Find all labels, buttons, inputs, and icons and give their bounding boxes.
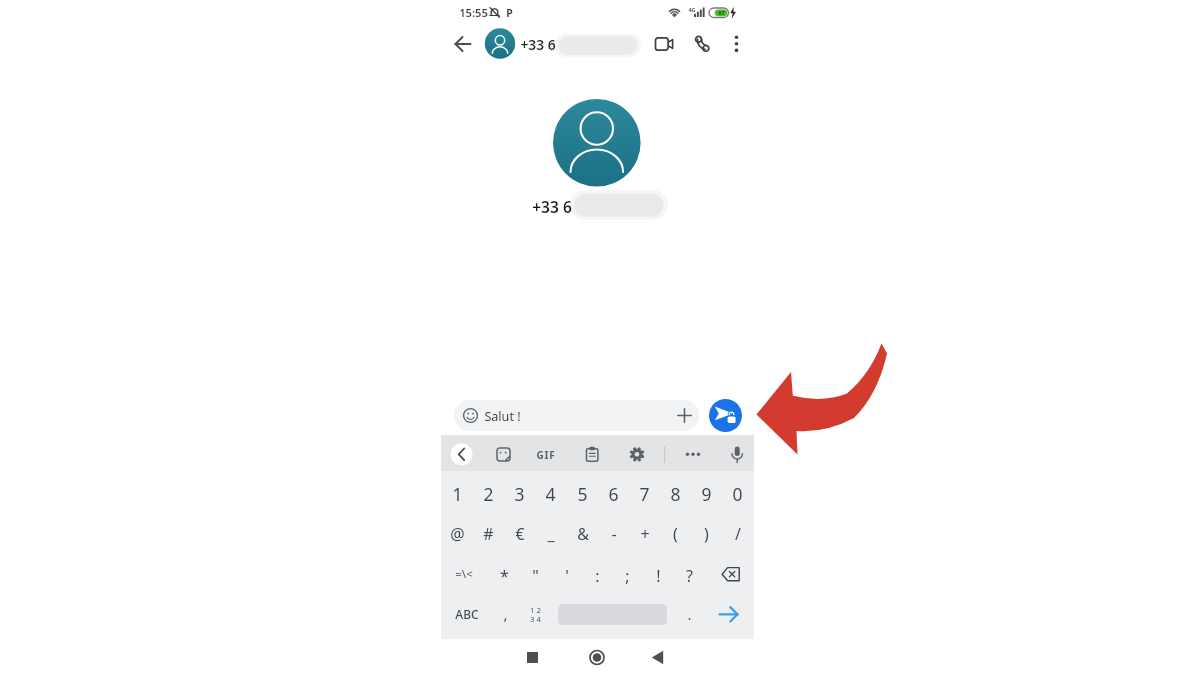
staticText: ; xyxy=(625,565,630,587)
button[interactable]: 0 xyxy=(722,477,753,511)
button[interactable] xyxy=(582,443,602,466)
staticText: GIF xyxy=(536,448,556,462)
button[interactable]: ' xyxy=(552,559,581,593)
button[interactable]: ! xyxy=(644,559,673,593)
staticText: 67 xyxy=(718,9,725,17)
button[interactable]: # xyxy=(473,517,504,551)
button[interactable] xyxy=(494,443,514,466)
button[interactable]: 8 xyxy=(660,477,691,511)
staticText: ABC xyxy=(455,606,479,622)
button[interactable]: 6 xyxy=(598,477,629,511)
staticText: 9 xyxy=(701,482,712,506)
staticText: € xyxy=(515,523,525,545)
button[interactable] xyxy=(727,443,747,466)
button[interactable]: ) xyxy=(691,517,722,551)
button[interactable] xyxy=(585,646,609,669)
staticText: 8 xyxy=(670,482,681,506)
button[interactable]: GIF xyxy=(506,440,586,470)
staticText: * xyxy=(500,565,509,587)
button[interactable] xyxy=(452,34,474,54)
staticText: 15:55 xyxy=(459,5,488,20)
button[interactable]: * xyxy=(490,559,519,593)
button[interactable] xyxy=(646,646,670,669)
button[interactable]: € xyxy=(504,517,535,551)
button[interactable]: 1 xyxy=(442,477,473,511)
staticText: . xyxy=(687,604,692,624)
button[interactable]: 1 2 3 4 xyxy=(522,597,548,631)
button[interactable]: / xyxy=(722,517,753,551)
staticText: 3 xyxy=(514,482,525,506)
button[interactable] xyxy=(710,598,748,631)
staticText: P xyxy=(506,6,513,20)
button[interactable]: . xyxy=(677,597,701,631)
staticText: 4 xyxy=(545,482,556,506)
button[interactable]: ? xyxy=(675,559,704,593)
staticText: 0 xyxy=(732,482,743,506)
button[interactable]: " xyxy=(521,559,550,593)
staticText: ? xyxy=(686,565,693,587)
button[interactable]: 2 xyxy=(473,477,504,511)
staticText: 6 xyxy=(608,482,619,506)
staticText: : xyxy=(595,565,600,587)
staticText: ! xyxy=(656,565,661,587)
button[interactable]: - xyxy=(598,517,629,551)
button[interactable] xyxy=(449,443,473,466)
staticText: 2 xyxy=(483,482,494,506)
staticText: - xyxy=(611,523,617,545)
button[interactable]: _ xyxy=(535,517,566,551)
button[interactable]: 9 xyxy=(691,477,722,511)
button[interactable] xyxy=(712,558,750,591)
button[interactable]: 3 xyxy=(504,477,535,511)
button[interactable]: : xyxy=(583,559,612,593)
button[interactable] xyxy=(728,34,746,54)
staticText: ( xyxy=(673,523,678,545)
staticText: +33 6 xyxy=(532,196,572,217)
button[interactable] xyxy=(627,443,647,466)
staticText: @ xyxy=(450,523,465,545)
staticText: / xyxy=(735,523,741,545)
button[interactable]: 5 xyxy=(567,477,598,511)
staticText: & xyxy=(577,523,589,545)
button[interactable]: ; xyxy=(613,559,642,593)
button[interactable]: =\< xyxy=(444,557,484,591)
staticText: ' xyxy=(565,565,569,587)
staticText: " xyxy=(532,565,539,587)
button[interactable] xyxy=(454,400,699,431)
button[interactable]: ( xyxy=(660,517,691,551)
staticText: ) xyxy=(704,523,709,545)
staticText: Salut ! xyxy=(484,408,521,425)
button[interactable] xyxy=(484,28,516,60)
button[interactable]: + xyxy=(629,517,660,551)
staticText: _ xyxy=(547,523,555,545)
staticText: # xyxy=(483,523,494,545)
button[interactable]: & xyxy=(567,517,598,551)
staticText: 7 xyxy=(639,482,650,506)
staticText: 1 2 3 4 xyxy=(530,605,541,624)
staticText: =\< xyxy=(455,566,473,582)
button[interactable] xyxy=(681,443,705,466)
button[interactable] xyxy=(692,34,714,54)
staticText: , xyxy=(503,604,508,624)
staticText: 4G xyxy=(688,6,696,13)
staticText: + xyxy=(640,523,650,545)
button[interactable] xyxy=(709,399,742,432)
staticText: 5 xyxy=(577,482,588,506)
staticText: 1 xyxy=(452,482,463,506)
button[interactable]: @ xyxy=(442,517,473,551)
button[interactable] xyxy=(652,34,676,54)
button[interactable]: 4 xyxy=(535,477,566,511)
button[interactable]: , xyxy=(493,597,517,631)
button[interactable]: ABC xyxy=(447,597,487,631)
staticText: +33 6 xyxy=(520,35,556,54)
button[interactable]: 7 xyxy=(629,477,660,511)
button[interactable] xyxy=(520,646,544,669)
